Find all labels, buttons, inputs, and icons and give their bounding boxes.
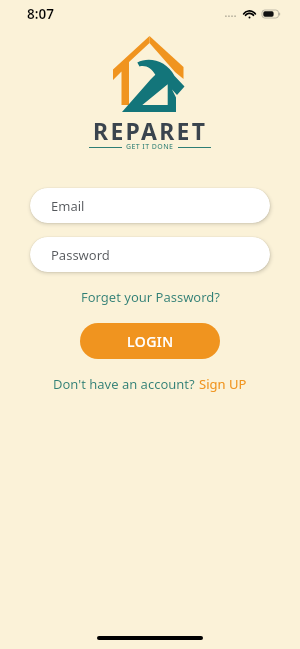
staticText: GET IT DONE	[126, 142, 174, 152]
staticText: Sign UP	[199, 375, 247, 393]
staticText: Password	[51, 246, 110, 264]
staticText: 8:07	[27, 5, 54, 23]
button[interactable]: LOGIN	[80, 323, 220, 359]
staticText: Forget your Password?	[81, 288, 220, 306]
staticText: Email	[51, 197, 85, 215]
button[interactable]: Email	[30, 188, 270, 223]
staticText: REPARET	[93, 115, 208, 146]
button[interactable]: Sign UP	[199, 375, 247, 393]
button[interactable]: Password	[30, 237, 270, 272]
button[interactable]: Forget your Password?	[71, 285, 230, 309]
staticText: Don't have an account?	[53, 375, 199, 393]
staticText: LOGIN	[127, 332, 174, 351]
